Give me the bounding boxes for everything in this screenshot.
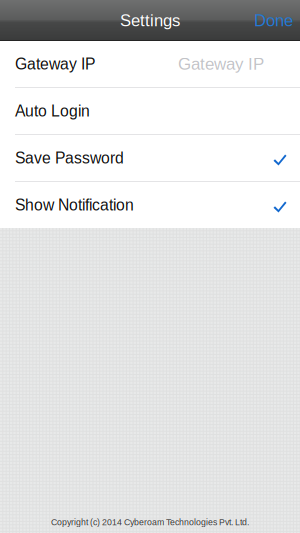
button[interactable]: Auto Login	[0, 88, 300, 134]
staticText: Save Password	[15, 149, 124, 167]
staticText: Gateway IP	[15, 55, 95, 73]
button[interactable]: Gateway IP	[0, 41, 300, 87]
staticText: Done	[254, 11, 293, 30]
staticText: Settings	[120, 11, 180, 30]
staticText: Copyright (c) 2014 Cyberoam Technologies…	[51, 517, 249, 527]
button[interactable]: Save Password	[0, 135, 300, 181]
staticText: Auto Login	[15, 102, 90, 120]
staticText: Show Notification	[15, 196, 134, 214]
staticText: Gateway IP	[178, 54, 264, 73]
button[interactable]: Done	[244, 2, 300, 39]
button[interactable]: Show Notification	[0, 182, 300, 228]
